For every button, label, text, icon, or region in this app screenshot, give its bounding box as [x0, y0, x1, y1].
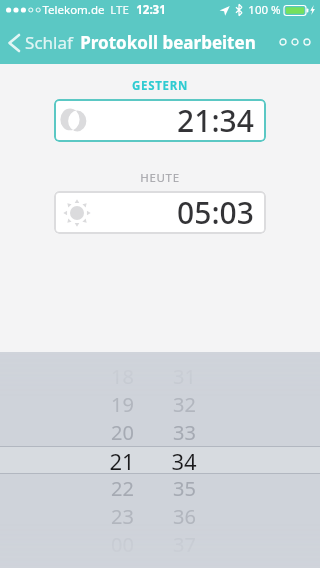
staticText: HEUTE	[140, 170, 180, 186]
staticText: 32	[173, 391, 196, 418]
button[interactable]: Mehr Optionen	[270, 26, 320, 58]
staticText: 12:31	[136, 2, 166, 18]
button[interactable]: 21:34	[54, 99, 266, 142]
staticText: 23	[111, 503, 134, 530]
staticText: 34	[171, 446, 197, 474]
staticText: 33	[173, 419, 196, 446]
staticText: 05:03	[177, 192, 254, 233]
staticText: 36	[173, 503, 196, 530]
staticText: Telekom.de	[42, 2, 105, 18]
staticText: 19	[111, 391, 134, 418]
staticText: 20	[111, 419, 134, 446]
other: Zurück	[8, 33, 20, 53]
staticText: GESTERN	[132, 78, 188, 94]
staticText: 21:34	[177, 100, 254, 141]
staticText: 100 %	[248, 2, 281, 18]
staticText: 21	[109, 446, 135, 474]
staticText: 22	[111, 475, 134, 502]
button[interactable]: Zurück	[0, 25, 77, 60]
staticText: 35	[173, 475, 196, 502]
button[interactable]: 05:03	[54, 191, 266, 234]
staticText: Schlaf	[25, 31, 73, 54]
button[interactable]: 18	[0, 352, 320, 568]
staticText: Protokoll bearbeiten	[80, 31, 256, 54]
staticText: LTE	[110, 2, 129, 18]
